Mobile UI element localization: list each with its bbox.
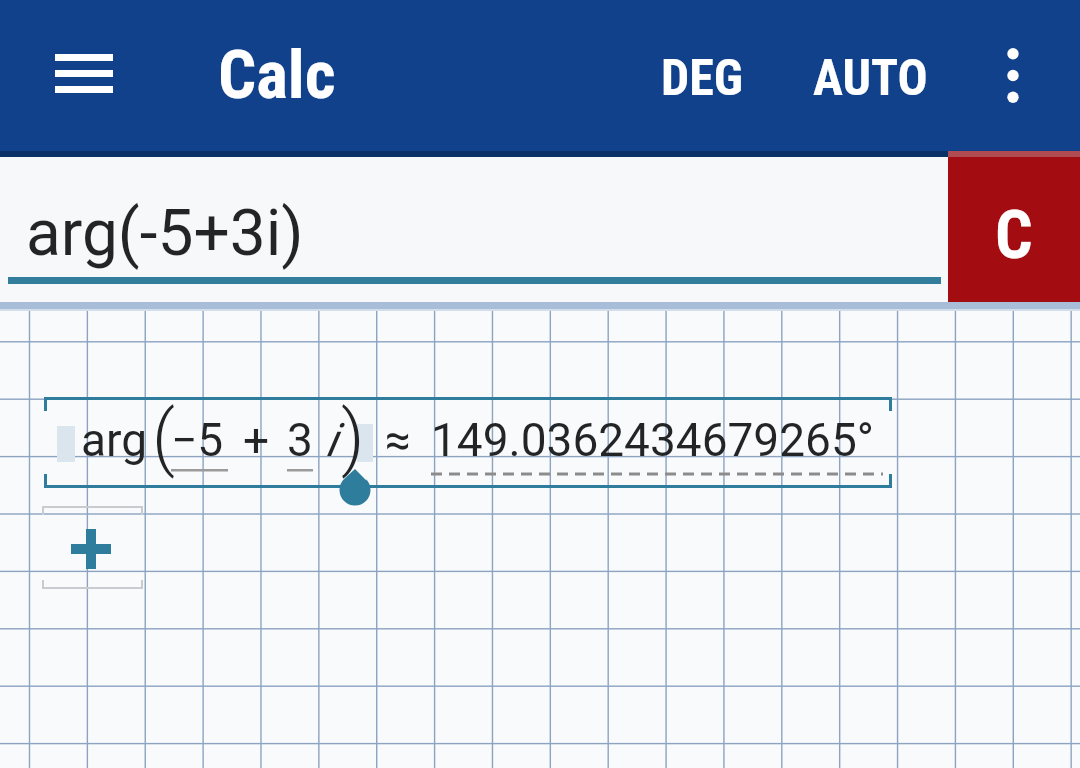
staticText: (: [152, 395, 175, 479]
button[interactable]: DEG: [642, 33, 762, 123]
button[interactable]: [0, 157, 948, 302]
button[interactable]: [42, 506, 143, 589]
staticText: 149.0362434679265°: [431, 413, 874, 467]
staticText: arg: [81, 413, 148, 467]
staticText: AUTO: [813, 49, 928, 108]
staticText: Calc: [218, 36, 336, 115]
staticText: DEG: [661, 49, 744, 108]
staticText: C: [995, 197, 1033, 274]
staticText: 3: [287, 413, 313, 467]
button[interactable]: [975, 25, 1050, 125]
staticText: ): [341, 395, 365, 479]
staticText: i: [326, 413, 337, 467]
staticText: −5: [171, 413, 224, 467]
button[interactable]: C: [948, 151, 1080, 302]
staticText: ≈: [385, 413, 411, 467]
button[interactable]: [35, 33, 133, 113]
button[interactable]: AUTO: [800, 33, 940, 123]
staticText: arg(-5+3i): [26, 196, 304, 271]
staticText: +: [243, 413, 270, 467]
